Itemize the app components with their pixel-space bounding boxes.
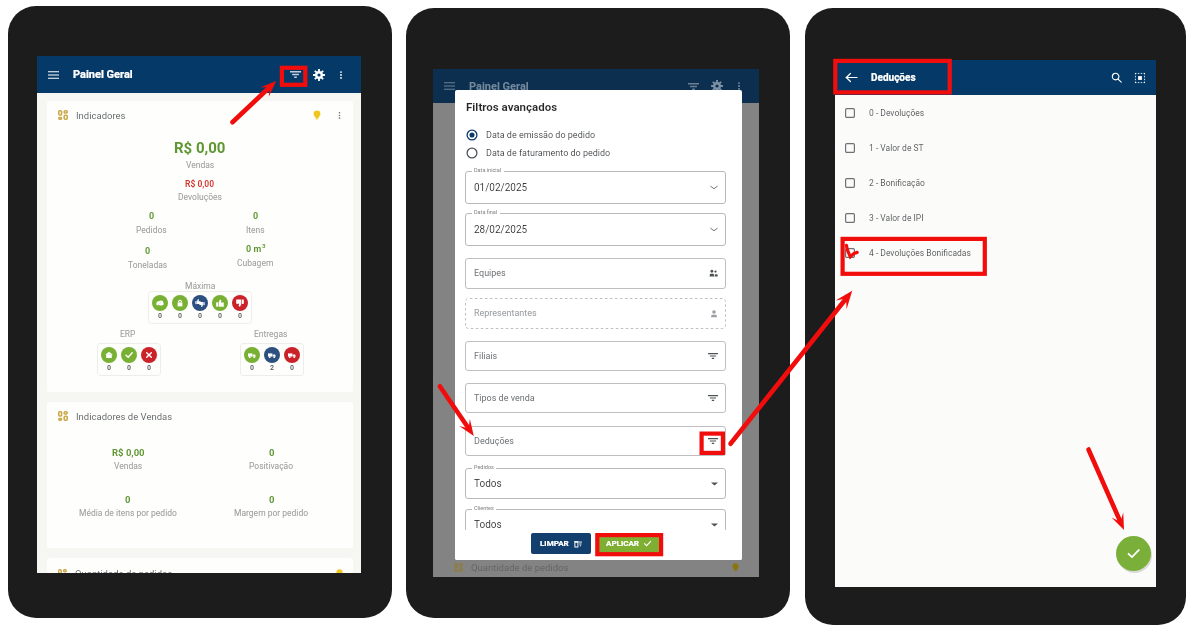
button[interactable]: up xyxy=(212,295,228,311)
staticText: Quantidade de pedidos xyxy=(75,568,173,573)
staticText: 2 xyxy=(270,364,275,372)
staticText: Data inicial xyxy=(474,167,502,173)
button[interactable] xyxy=(465,509,726,540)
staticText: 4 - Devoluções Bonificadas xyxy=(869,248,971,258)
button[interactable]: down xyxy=(232,295,248,311)
button[interactable]: Buscar xyxy=(1104,60,1128,95)
button[interactable]: 2 - Bonificação xyxy=(835,165,1156,200)
staticText: Equipes xyxy=(474,268,506,279)
staticText: R$ 0,00 xyxy=(185,179,215,189)
staticText: ERP xyxy=(120,329,136,339)
staticText: Vendas xyxy=(114,461,143,471)
staticText: 0 xyxy=(147,364,152,372)
staticText: Tipos de venda xyxy=(474,393,535,404)
button[interactable]: 4 - Devoluções Bonificadas xyxy=(835,235,1156,270)
staticText: Pedidos xyxy=(136,225,167,235)
button[interactable]: truck xyxy=(244,347,260,363)
staticText: Todos xyxy=(474,478,502,490)
staticText: Quantidade de pedidos xyxy=(471,562,569,573)
staticText: Filtros avançados xyxy=(466,100,558,113)
button[interactable]: lock xyxy=(172,295,188,311)
button[interactable]: Mais opções xyxy=(330,56,352,93)
staticText: Devoluções xyxy=(178,192,222,202)
button[interactable]: 0 - Devoluções xyxy=(835,95,1156,130)
staticText: 3 - Valor de IPI xyxy=(869,213,924,223)
staticText: 01/02/2025 xyxy=(474,182,528,194)
staticText: LIMPAR xyxy=(540,539,569,548)
button[interactable]: home xyxy=(101,347,117,363)
staticText: Média de itens por pedido xyxy=(79,508,177,518)
staticText: Margem por pedido xyxy=(234,508,309,518)
staticText: Data de faturamento do pedido xyxy=(486,148,611,159)
staticText: 2 - Bonificação xyxy=(869,178,925,188)
button[interactable]: Voltar xyxy=(835,60,868,95)
button[interactable]: Configurações xyxy=(307,56,330,93)
staticText: R$ 0,00 xyxy=(174,139,226,157)
button[interactable]: Selecionar tudo xyxy=(1128,60,1152,95)
staticText: 0 xyxy=(178,312,183,320)
staticText: Pedidos xyxy=(474,464,494,470)
button[interactable]: Mais xyxy=(332,108,346,122)
staticText: Positivação xyxy=(249,461,294,471)
button[interactable] xyxy=(465,298,726,329)
button[interactable]: LIMPAR xyxy=(531,533,591,554)
staticText: R$ 0,00 xyxy=(112,447,145,458)
button[interactable] xyxy=(465,383,726,413)
staticText: Deduções xyxy=(474,436,514,447)
button[interactable]: Data de emissão do pedido xyxy=(466,128,596,142)
button[interactable]: truck xyxy=(284,347,300,363)
staticText: Painel Geral xyxy=(73,68,133,81)
staticText: Entregas xyxy=(254,329,288,339)
button[interactable]: Data de faturamento do pedido xyxy=(466,146,611,160)
staticText: Itens xyxy=(246,225,265,235)
staticText: Indicadores xyxy=(76,110,126,121)
staticText: 0 xyxy=(218,312,223,320)
button[interactable]: APLICAR xyxy=(598,533,660,554)
staticText: Vendas xyxy=(186,160,215,170)
staticText: 0 xyxy=(250,364,255,372)
button[interactable]: 3 - Valor de IPI xyxy=(835,200,1156,235)
staticText: Data final xyxy=(474,209,498,215)
staticText: Painel Geral xyxy=(469,80,529,93)
staticText: APLICAR xyxy=(606,539,639,548)
staticText: 0 xyxy=(149,211,155,222)
staticText: 0 xyxy=(269,447,275,458)
staticText: 0 xyxy=(269,494,275,505)
staticText: 0 xyxy=(107,364,112,372)
button[interactable] xyxy=(465,258,726,289)
staticText: Toneladas xyxy=(128,260,168,270)
button[interactable]: x xyxy=(141,347,157,363)
staticText: 0 - Devoluções xyxy=(869,108,925,118)
staticText: Cubagem xyxy=(237,258,274,268)
button[interactable]: check xyxy=(121,347,137,363)
button[interactable]: Ajuda xyxy=(308,106,326,124)
staticText: 0 xyxy=(125,494,131,505)
staticText: 0 xyxy=(238,312,243,320)
staticText: Representantes xyxy=(474,308,537,319)
staticText: 0 xyxy=(253,211,259,222)
button[interactable] xyxy=(465,171,726,204)
staticText: 0 xyxy=(290,364,295,372)
staticText: 0 xyxy=(198,312,203,320)
staticText: 1 - Valor de ST xyxy=(869,143,924,153)
button[interactable] xyxy=(465,468,726,499)
button[interactable]: truck xyxy=(264,347,280,363)
button[interactable]: thumbs xyxy=(192,295,208,311)
button[interactable] xyxy=(465,426,726,456)
staticText: 0 xyxy=(158,312,163,320)
button[interactable]: Confirmar xyxy=(1116,536,1151,571)
staticText: 3 xyxy=(262,242,266,249)
staticText: Todos xyxy=(474,519,502,531)
button[interactable]: Menu xyxy=(37,56,70,93)
button[interactable]: Filtro xyxy=(284,56,307,93)
button[interactable]: 1 - Valor de ST xyxy=(835,130,1156,165)
button[interactable]: cloud xyxy=(152,295,168,311)
button[interactable] xyxy=(465,341,726,371)
staticText: Clientes xyxy=(474,505,494,511)
staticText: Máxima xyxy=(185,281,216,291)
staticText: 0 xyxy=(127,364,132,372)
staticText: 0 xyxy=(145,246,151,257)
button[interactable] xyxy=(465,213,726,246)
staticText: Filiais xyxy=(474,351,498,362)
staticText: Data de emissão do pedido xyxy=(486,130,596,141)
